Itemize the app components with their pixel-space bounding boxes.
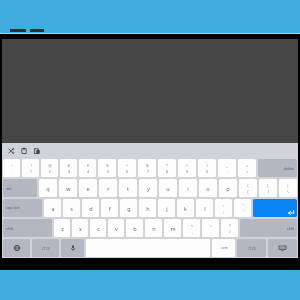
button[interactable]: o: [199, 179, 217, 197]
button[interactable]: <: [183, 219, 200, 237]
staticText: l: [204, 205, 206, 212]
staticText: ^: [126, 163, 128, 168]
staticText: shift: [287, 226, 294, 231]
button[interactable]: s: [63, 199, 80, 217]
button[interactable]: t: [119, 179, 137, 197]
button[interactable]: v: [108, 219, 124, 237]
button[interactable]: Hide keyboard: [268, 239, 297, 257]
staticText: caps lock: [6, 206, 20, 210]
button[interactable]: a: [44, 199, 61, 217]
button[interactable]: Dictation: [61, 239, 84, 257]
button[interactable]: i: [179, 179, 197, 197]
staticText: 0: [206, 169, 208, 174]
button[interactable]: m: [164, 219, 181, 237]
button[interactable]: c: [90, 219, 106, 237]
button[interactable]: >: [202, 219, 219, 237]
button[interactable]: Tab: [3, 179, 37, 197]
button[interactable]: :: [215, 199, 232, 217]
button[interactable]: @: [41, 159, 58, 177]
button[interactable]: l: [196, 199, 213, 217]
staticText: t: [127, 185, 129, 192]
button[interactable]: w: [59, 179, 77, 197]
button[interactable]: Cut: [6, 146, 15, 155]
staticText: s: [70, 205, 73, 212]
button[interactable]: #: [60, 159, 77, 177]
staticText: (: [186, 163, 188, 168]
button[interactable]: Copy: [19, 146, 28, 155]
button[interactable]: +: [238, 159, 256, 177]
button[interactable]: &: [138, 159, 156, 177]
button[interactable]: n: [145, 219, 162, 237]
button[interactable]: j: [158, 199, 175, 217]
button[interactable]: h: [139, 199, 156, 217]
staticText: x: [79, 225, 82, 232]
button[interactable]: ~: [3, 159, 20, 177]
button[interactable]: Numbers right: [237, 239, 266, 257]
staticText: ;: [223, 209, 224, 214]
button[interactable]: b: [126, 219, 143, 237]
button[interactable]: *: [158, 159, 176, 177]
button[interactable]: (: [178, 159, 196, 177]
staticText: _: [226, 163, 228, 168]
staticText: ~: [11, 163, 13, 168]
staticText: /: [229, 229, 231, 234]
staticText: $: [87, 163, 89, 168]
button[interactable]: k: [177, 199, 194, 217]
staticText: #: [67, 163, 70, 168]
staticText: 8: [166, 169, 168, 174]
staticText: [: [247, 189, 249, 194]
button[interactable]: Paste: [32, 146, 41, 155]
staticText: 9: [186, 169, 188, 174]
button[interactable]: r: [99, 179, 117, 197]
button[interactable]: u: [159, 179, 177, 197]
staticText: 6: [126, 169, 128, 174]
button[interactable]: Numbers: [32, 239, 59, 257]
staticText: i: [187, 185, 189, 192]
button[interactable]: }: [259, 179, 277, 197]
button[interactable]: q: [39, 179, 57, 197]
button[interactable]: %: [98, 159, 116, 177]
button[interactable]: p: [219, 179, 237, 197]
staticText: z: [61, 225, 64, 232]
staticText: y: [147, 185, 150, 192]
button[interactable]: x: [72, 219, 88, 237]
staticText: `: [12, 169, 13, 174]
button[interactable]: ^: [118, 159, 136, 177]
button[interactable]: {: [239, 179, 257, 197]
button[interactable]: $: [79, 159, 96, 177]
staticText: }: [267, 183, 269, 188]
button[interactable]: _: [218, 159, 236, 177]
button[interactable]: .com: [212, 239, 235, 257]
button[interactable]: ): [198, 159, 216, 177]
button[interactable]: d: [82, 199, 99, 217]
button[interactable]: Emoji: [3, 239, 30, 257]
button[interactable]: ?: [221, 219, 238, 237]
staticText: =: [246, 169, 248, 174]
button[interactable]: Shift: [3, 219, 52, 237]
button[interactable]: Right shift: [240, 219, 297, 237]
staticText: h: [146, 205, 150, 212]
staticText: *: [166, 163, 168, 168]
button[interactable]: ": [234, 199, 251, 217]
staticText: ): [206, 163, 208, 168]
button[interactable]: Return: [253, 199, 297, 217]
button[interactable]: f: [101, 199, 118, 217]
button[interactable]: y: [139, 179, 157, 197]
button[interactable]: |: [279, 179, 297, 197]
staticText: +: [246, 163, 248, 168]
button[interactable]: !: [22, 159, 39, 177]
staticText: @: [48, 163, 52, 168]
button[interactable]: e: [79, 179, 97, 197]
button[interactable]: z: [54, 219, 70, 237]
staticText: -: [226, 169, 228, 174]
button[interactable]: Caps lock: [3, 199, 42, 217]
staticText: a: [51, 205, 55, 212]
staticText: 7: [147, 169, 149, 174]
staticText: f: [109, 205, 111, 212]
staticText: .: [211, 229, 212, 234]
button[interactable]: g: [120, 199, 137, 217]
button[interactable]: Delete: [258, 159, 297, 177]
